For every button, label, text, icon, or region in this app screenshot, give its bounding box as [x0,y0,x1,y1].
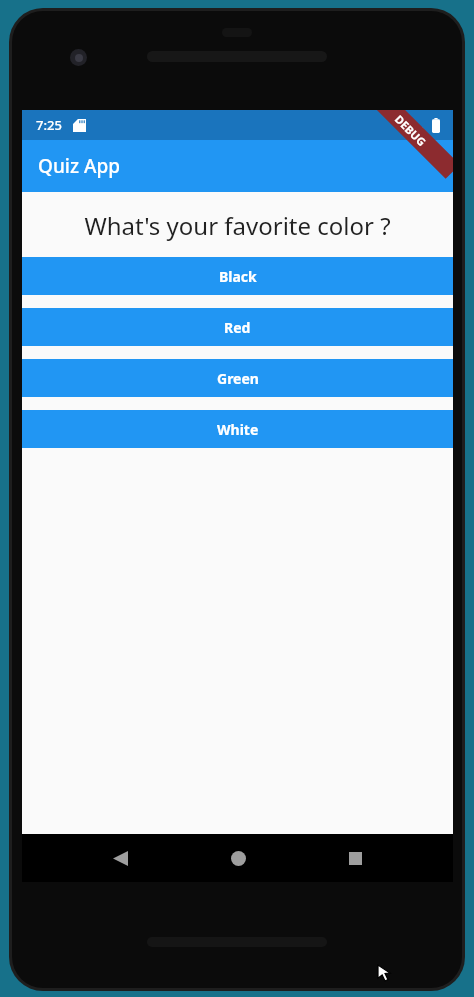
staticText: Quiz App [38,153,120,179]
staticText: Black [219,267,257,286]
button[interactable]: Home [216,836,260,880]
staticText: What's your favorite color ? [84,209,391,242]
staticText: DEBUG [392,112,429,149]
button[interactable]: Back [98,836,142,880]
button[interactable]: Red [22,308,453,346]
staticText: Red [224,318,251,337]
staticText: White [217,420,259,439]
staticText: Green [217,369,259,388]
button[interactable]: Green [22,359,453,397]
button[interactable]: Recent apps [333,836,377,880]
button[interactable]: Black [22,257,453,295]
button[interactable]: White [22,410,453,448]
staticText: 7:25 [36,116,62,134]
